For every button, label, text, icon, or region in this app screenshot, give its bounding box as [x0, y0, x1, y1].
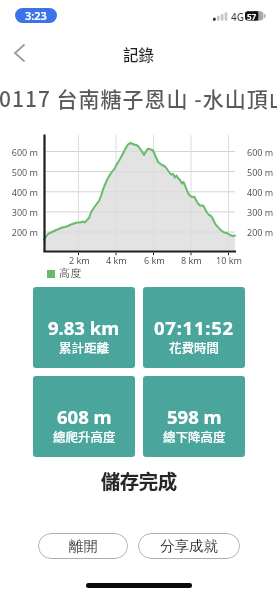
staticText: 200 m — [247, 226, 274, 238]
staticText: 花費時間 — [169, 338, 220, 354]
staticText: 2 km — [69, 254, 90, 266]
staticText: 4G — [231, 10, 244, 24]
staticText: 8 km — [181, 254, 202, 266]
staticText: 4 km — [106, 254, 127, 266]
staticText: 高度 — [59, 266, 81, 280]
staticText: 10 km — [216, 254, 242, 266]
staticText: 300 m — [0, 206, 38, 218]
staticText: 總下降高度 — [163, 427, 226, 443]
staticText: 6 km — [144, 254, 165, 266]
staticText: 500 m — [247, 166, 274, 178]
staticText: 0117 台南糖子恩山 -水山頂山 — [0, 83, 277, 113]
staticText: 07:11:52 — [154, 315, 234, 339]
staticText: 600 m — [247, 146, 274, 158]
button[interactable]: 分享成就 — [138, 533, 240, 559]
staticText: 離開 — [69, 537, 98, 555]
staticText: 3:23 — [25, 8, 47, 23]
staticText: 400 m — [247, 186, 274, 198]
staticText: 累計距離 — [59, 338, 110, 354]
button[interactable] — [6, 42, 34, 66]
button[interactable]: 離開 — [38, 533, 128, 559]
staticText: 608 m — [57, 404, 112, 428]
staticText: 598 m — [167, 404, 222, 428]
staticText: 500 m — [0, 166, 38, 178]
staticText: 400 m — [0, 186, 38, 198]
staticText: 總爬升高度 — [53, 427, 116, 443]
staticText: 儲存完成 — [101, 467, 178, 495]
staticText: 300 m — [247, 206, 274, 218]
staticText: 57 — [247, 11, 257, 21]
staticText: 記錄 — [123, 43, 155, 64]
staticText: 200 m — [0, 226, 38, 238]
staticText: 分享成就 — [160, 537, 218, 555]
staticText: 600 m — [0, 146, 38, 158]
staticText: 9.83 km — [48, 315, 120, 339]
